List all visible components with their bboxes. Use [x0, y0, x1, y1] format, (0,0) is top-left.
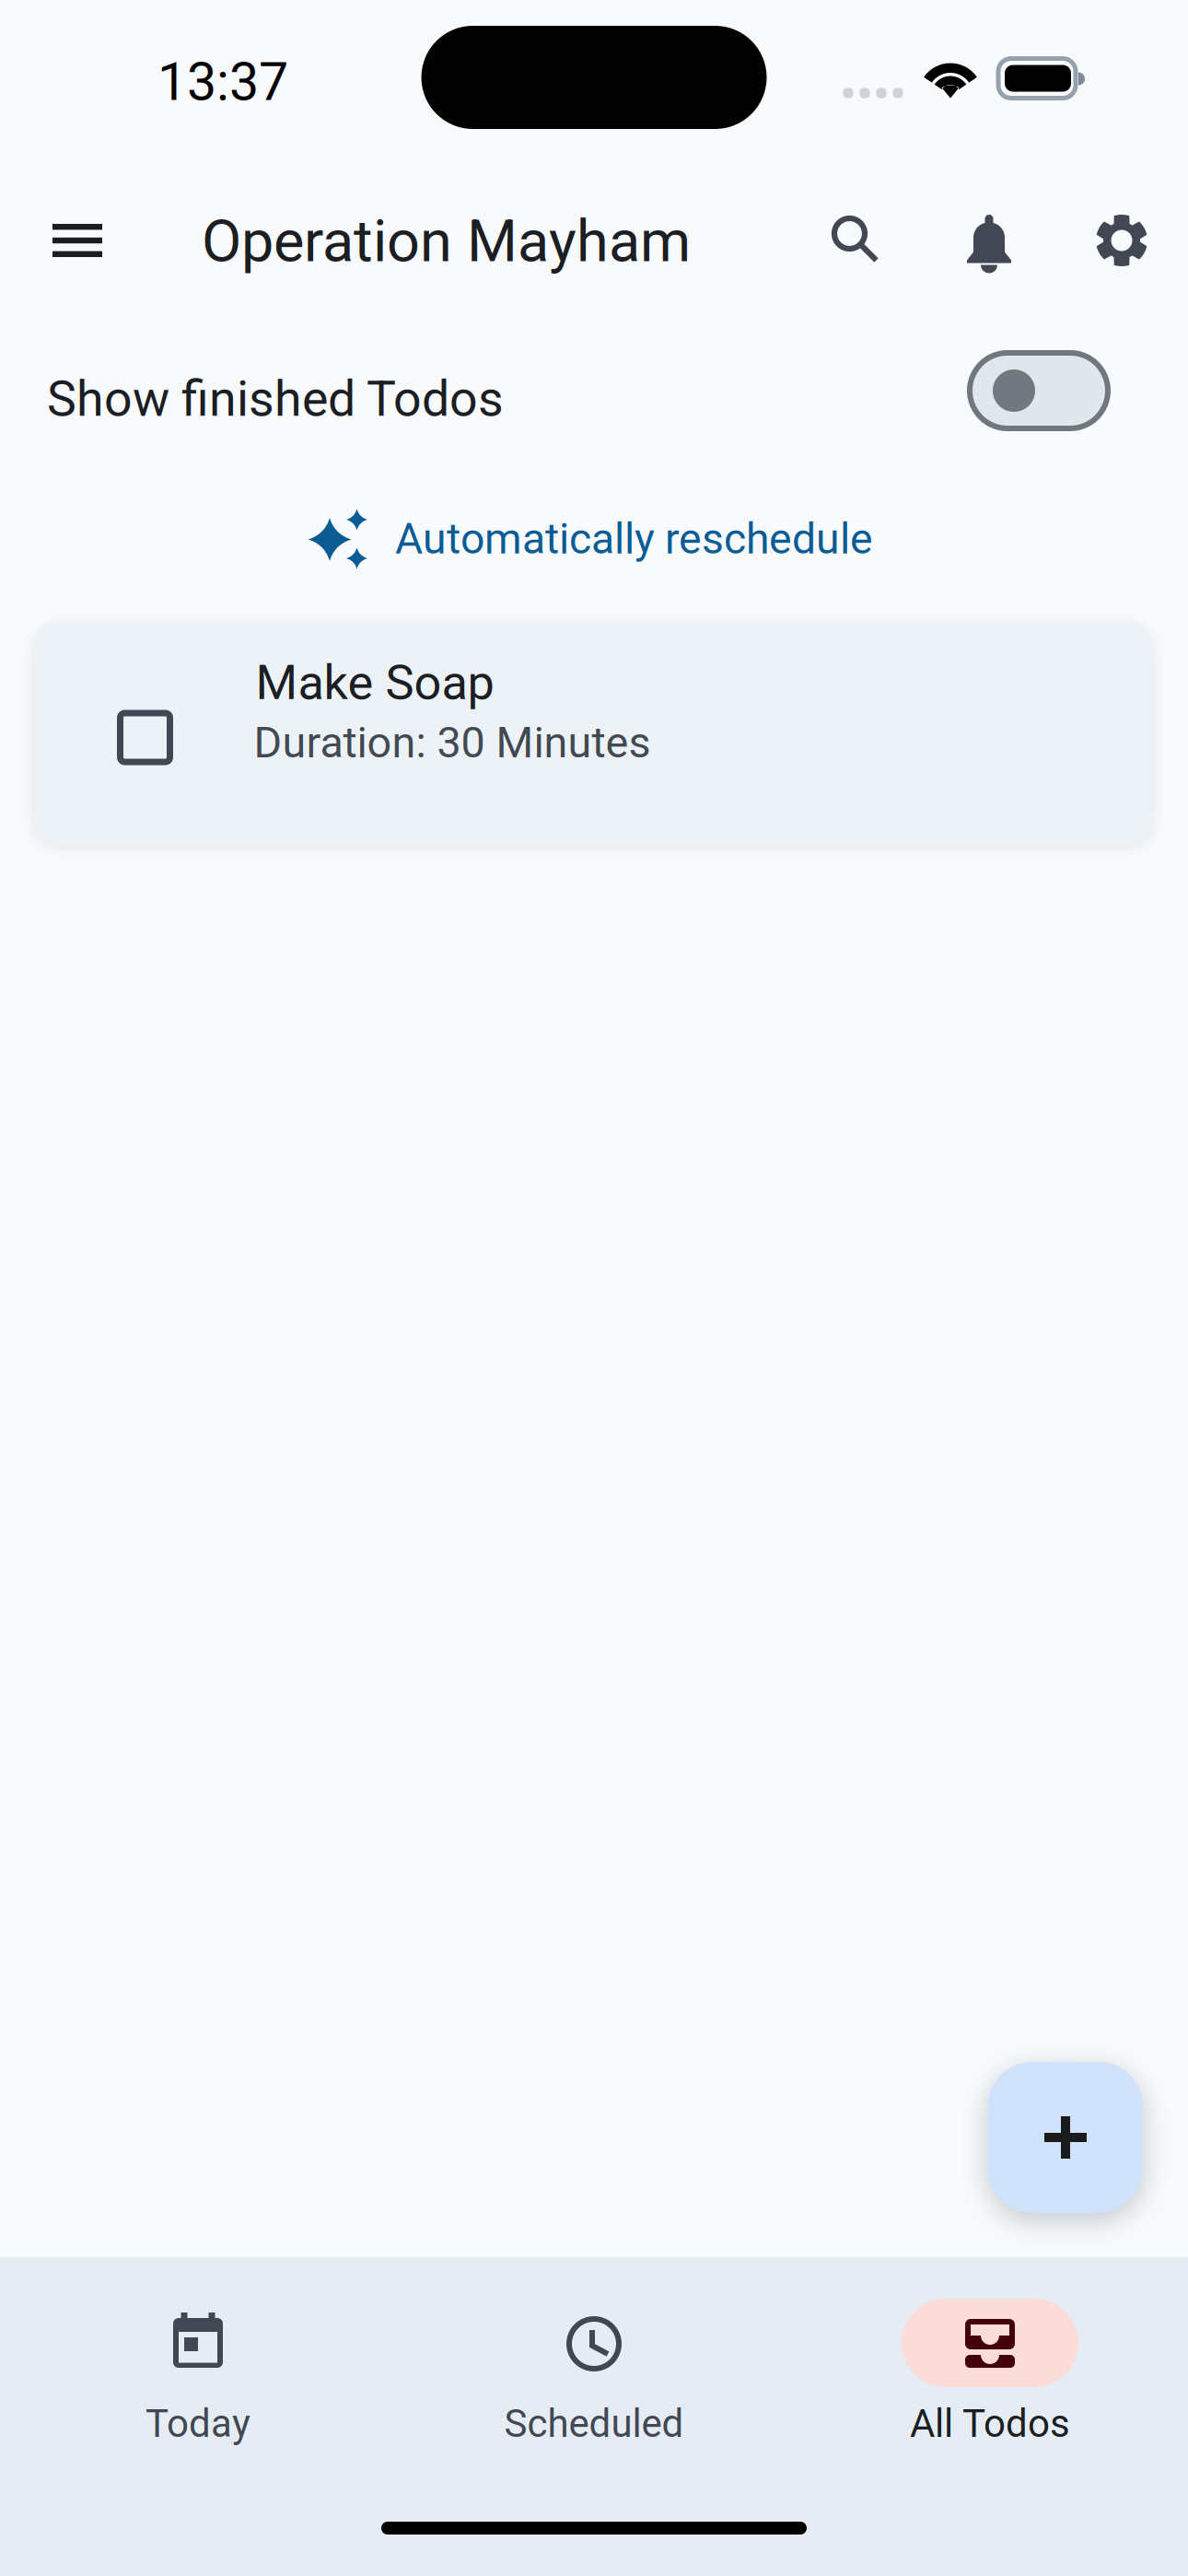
button[interactable]: Notifications: [938, 190, 1041, 293]
staticText: Scheduled: [504, 2401, 684, 2446]
button[interactable]: Search: [804, 188, 907, 291]
button[interactable]: Today: [0, 2257, 396, 2576]
staticText: Make Soap: [256, 655, 494, 711]
staticText: Operation Mayham: [202, 207, 691, 275]
staticText: Today: [146, 2401, 250, 2446]
button[interactable]: Make Soap: [34, 622, 1153, 845]
button[interactable]: Show finished Todos: [49, 326, 1159, 455]
staticText: Automatically reschedule: [395, 514, 873, 564]
button[interactable]: Automatically reschedule: [309, 491, 876, 587]
staticText: All Todos: [910, 2401, 1070, 2446]
button[interactable]: Scheduled: [396, 2257, 792, 2576]
staticText: Show finished Todos: [47, 370, 504, 428]
button[interactable]: Menu: [26, 189, 129, 292]
staticText: 13:37: [157, 51, 288, 113]
button[interactable]: All Todos: [792, 2257, 1188, 2576]
button[interactable]: Add todo: [988, 2062, 1143, 2213]
staticText: Duration: 30 Minutes: [254, 717, 651, 768]
button[interactable]: Settings: [1070, 189, 1173, 292]
